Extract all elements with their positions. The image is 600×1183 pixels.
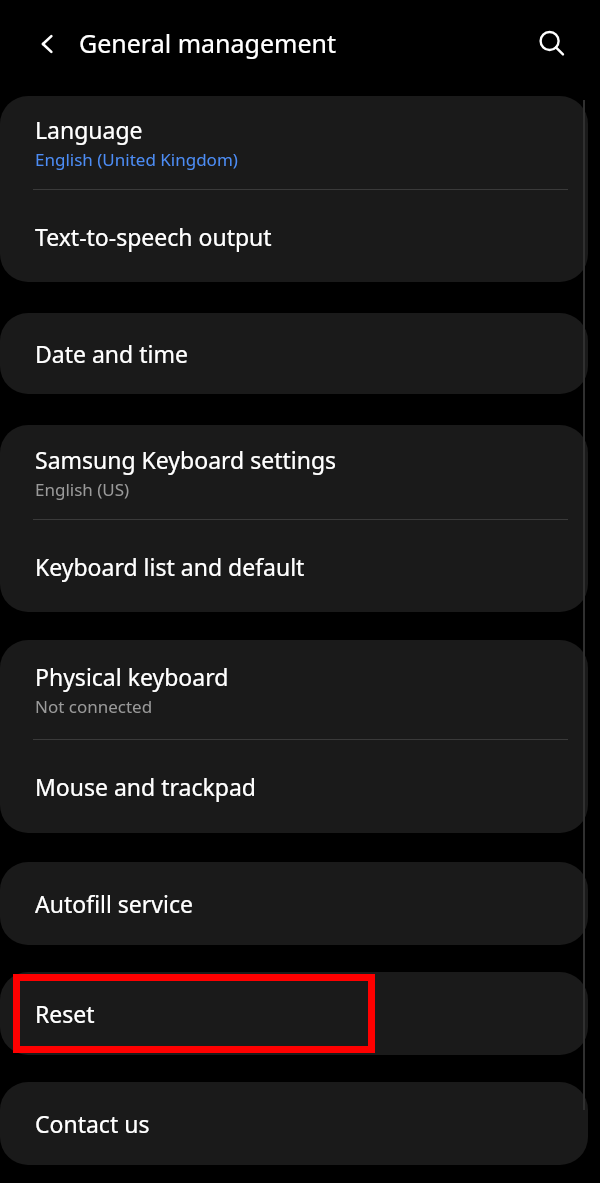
staticText: English (United Kingdom) [35, 148, 238, 171]
staticText: General management [79, 26, 336, 60]
button[interactable]: Samsung Keyboard settings [0, 425, 588, 519]
button[interactable]: Autofill service [0, 862, 588, 945]
staticText: Not connected [35, 695, 153, 718]
staticText: Mouse and trackpad [35, 771, 256, 802]
staticText: Date and time [35, 338, 188, 369]
staticText: Text-to-speech output [35, 221, 272, 252]
button[interactable]: Date and time [0, 313, 588, 394]
button[interactable]: Back [20, 16, 76, 72]
button[interactable]: Text-to-speech output [0, 190, 588, 282]
button[interactable]: Language [0, 96, 588, 189]
staticText: Samsung Keyboard settings [35, 444, 337, 475]
button[interactable]: Keyboard list and default [0, 520, 588, 612]
staticText: Contact us [35, 1108, 150, 1139]
staticText: Keyboard list and default [35, 551, 305, 582]
button[interactable]: Contact us [0, 1082, 588, 1165]
staticText: Reset [35, 998, 95, 1029]
staticText: Autofill service [35, 888, 193, 919]
staticText: Physical keyboard [35, 661, 229, 692]
staticText: English (US) [35, 478, 130, 501]
staticText: Language [35, 114, 143, 145]
button[interactable]: Reset [0, 972, 588, 1055]
button[interactable]: Search [526, 18, 578, 70]
button[interactable]: Mouse and trackpad [0, 740, 588, 833]
button[interactable]: Physical keyboard [0, 640, 588, 739]
